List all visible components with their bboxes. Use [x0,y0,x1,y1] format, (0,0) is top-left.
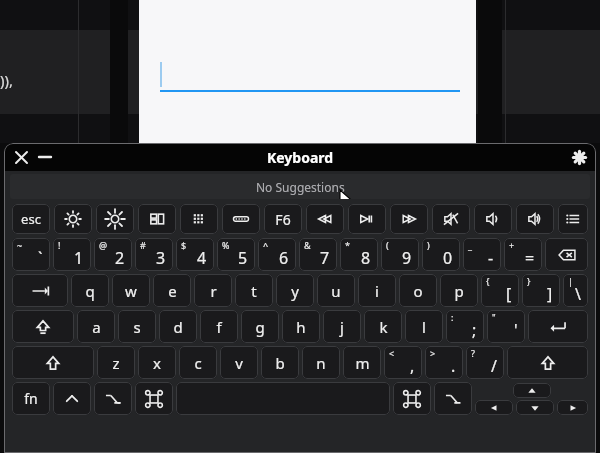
button[interactable]: Option right [434,382,472,415]
button[interactable]: Left [475,400,513,415]
button[interactable]: e [153,274,191,307]
staticText: 7 [320,247,330,269]
button[interactable]: _ - [463,238,501,271]
button[interactable]: s [118,310,156,343]
button[interactable]: Mission Control [138,204,176,234]
button[interactable]: No Suggestions [10,174,590,199]
button[interactable]: v [220,346,258,379]
button[interactable]: o [399,274,437,307]
button[interactable]: & 7 [299,238,337,271]
button[interactable]: Volume down [474,204,512,234]
button[interactable]: ^ 6 [258,238,296,271]
button[interactable]: < , [384,346,422,379]
staticText: 9 [402,247,412,269]
button[interactable]: " ' [487,310,525,343]
button[interactable]: Tab [12,274,68,307]
button[interactable]: Up [513,383,551,398]
button[interactable]: Return [528,310,588,343]
button[interactable]: j [323,310,361,343]
staticText: d [173,317,183,337]
button[interactable]: Settings [568,146,590,168]
staticText: , [410,355,415,377]
button[interactable]: Fast forward [390,204,428,234]
button[interactable]: c [179,346,217,379]
button[interactable]: z [97,346,135,379]
button[interactable]: Launchpad [180,204,218,234]
button[interactable]: Close [10,146,32,168]
button[interactable]: u [317,274,355,307]
staticText: + [509,239,515,251]
button[interactable]: g [241,310,279,343]
button[interactable]: Option [94,382,132,415]
button[interactable]: Down [516,400,554,415]
button[interactable]: Control [53,382,91,415]
button[interactable]: Brightness up [96,204,134,234]
button[interactable]: h [282,310,320,343]
staticText: . [451,355,456,377]
button[interactable]: Right [557,400,588,415]
button[interactable]: b [261,346,299,379]
staticText: esc [21,210,41,228]
button[interactable]: % 5 [217,238,255,271]
button[interactable]: * 8 [340,238,378,271]
button[interactable]: k [364,310,402,343]
staticText: ` [38,247,43,269]
button[interactable]: ) 0 [422,238,460,271]
staticText: ~ [17,239,23,251]
button[interactable]: ( 9 [381,238,419,271]
staticText: } [527,275,531,287]
button[interactable]: { [ [481,274,519,307]
button[interactable]: Mute [432,204,470,234]
button[interactable]: > . [425,346,463,379]
button[interactable]: Space [176,382,390,415]
button[interactable]: m [343,346,381,379]
button[interactable]: i [358,274,396,307]
staticText: s [133,317,141,337]
staticText: 5 [238,247,248,269]
staticText: No Suggestions [256,179,345,195]
button[interactable]: Keyboard brightness [222,204,260,234]
button[interactable]: : ; [446,310,484,343]
button[interactable]: Shift right [507,346,588,379]
button[interactable]: l [405,310,443,343]
button[interactable]: ? / [466,346,504,379]
button[interactable]: F6 [264,204,302,234]
button[interactable]: w [112,274,150,307]
button[interactable]: ! 1 [53,238,91,271]
button[interactable]: } ] [522,274,560,307]
button[interactable]: @ 2 [94,238,132,271]
button[interactable]: Play pause [348,204,386,234]
staticText: [ [506,283,512,305]
staticText: 8 [361,247,371,269]
button[interactable]: Shift [12,346,94,379]
staticText: * [345,239,350,251]
button[interactable]: Rewind [306,204,344,234]
button[interactable]: f [200,310,238,343]
staticText: { [486,275,490,287]
button[interactable]: p [440,274,478,307]
button[interactable]: + = [504,238,542,271]
button[interactable]: x [138,346,176,379]
button[interactable]: Brightness down [54,204,92,234]
button[interactable]: d [159,310,197,343]
button[interactable]: Menu [558,204,588,234]
button[interactable]: Delete [545,238,588,271]
button[interactable]: r [194,274,232,307]
button[interactable]: Caps lock [12,310,74,343]
button[interactable]: ~ ` [12,238,50,271]
button[interactable]: Minimize [34,146,56,168]
button[interactable]: q [71,274,109,307]
button[interactable]: fn [12,382,50,415]
button[interactable]: | \ [563,274,588,307]
button[interactable]: Command left [135,382,173,415]
button[interactable]: n [302,346,340,379]
button[interactable]: esc [12,204,50,234]
button[interactable]: # 3 [135,238,173,271]
button[interactable]: t [235,274,273,307]
button[interactable]: Volume up [516,204,554,234]
button[interactable]: Command right [393,382,431,415]
button[interactable]: $ 4 [176,238,214,271]
staticText: ) [427,239,430,251]
button[interactable]: a [77,310,115,343]
button[interactable]: y [276,274,314,307]
